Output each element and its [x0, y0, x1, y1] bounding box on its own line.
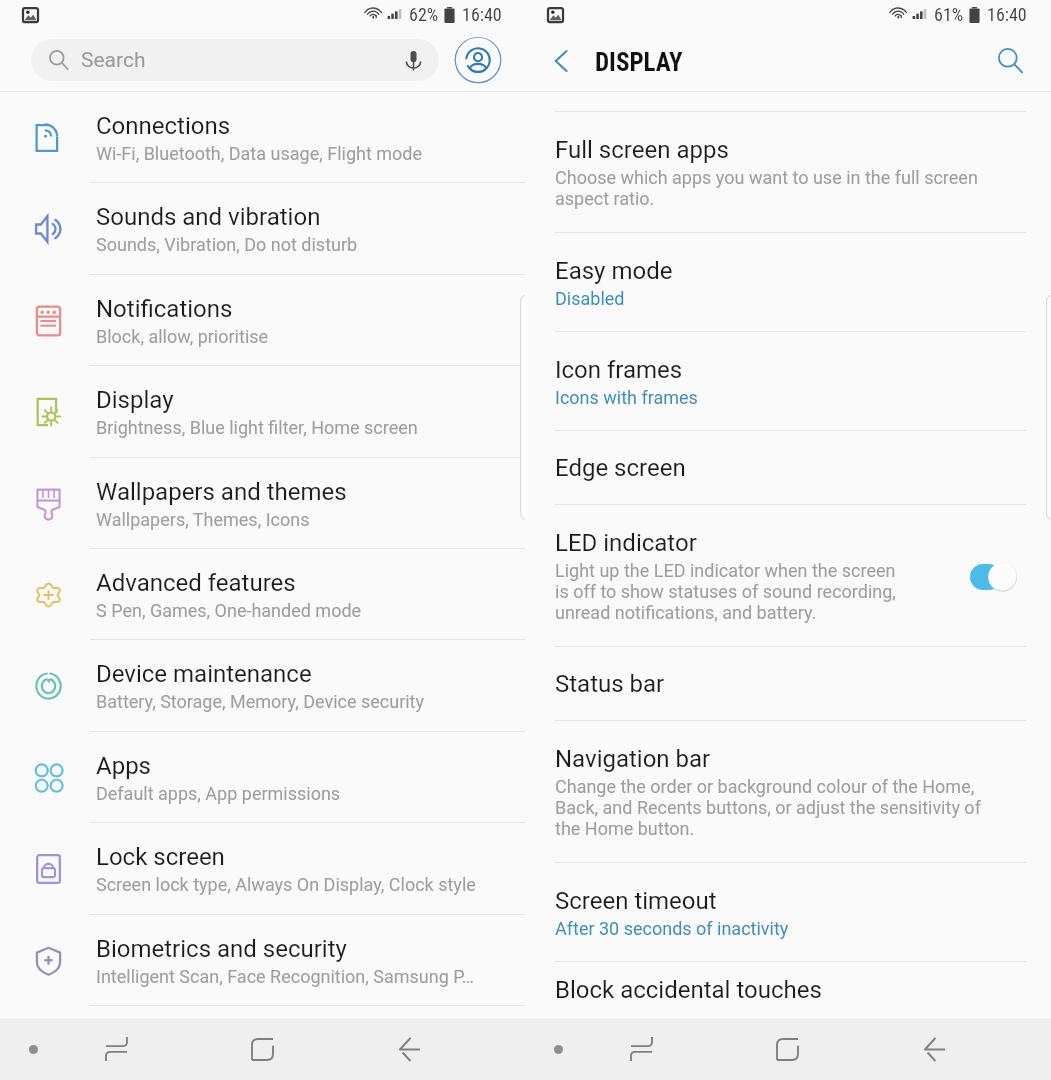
staticText: Biometrics and security [96, 935, 347, 963]
staticText: S Pen, Games, One-handed mode [96, 600, 362, 621]
button[interactable]: LED indicator toggle [970, 562, 1017, 591]
button[interactable]: Apps [0, 732, 525, 823]
staticText: Battery, Storage, Memory, Device securit… [96, 691, 425, 712]
staticText: Change the order or background colour of… [555, 776, 997, 839]
staticText: Connections [96, 112, 231, 140]
button[interactable]: Easy mode [525, 233, 1051, 332]
staticText: Wallpapers, Themes, Icons [96, 509, 310, 530]
button[interactable]: Edge screen [525, 431, 1051, 505]
button[interactable]: Recents [619, 1027, 663, 1071]
button[interactable]: Connections [0, 92, 525, 183]
staticText: 61% [934, 4, 964, 25]
button[interactable]: Navigation bar [525, 721, 1051, 863]
button[interactable]: Biometrics and security [0, 915, 525, 1006]
staticText: 16:40 [462, 4, 502, 25]
button[interactable]: Search [31, 39, 439, 81]
staticText: Icon frames [555, 356, 683, 384]
button[interactable]: Screen timeout [525, 863, 1051, 962]
staticText: Device maintenance [96, 660, 312, 688]
staticText: 16:40 [987, 4, 1027, 25]
staticText: After 30 seconds of inactivity [555, 918, 789, 939]
staticText: Block accidental touches [555, 976, 822, 1004]
button[interactable]: Wallpapers and themes [0, 458, 525, 549]
staticText: Apps [96, 752, 151, 780]
staticText: Search [81, 48, 146, 73]
button[interactable]: LED indicator [525, 505, 1051, 647]
button[interactable]: Navigate up [537, 37, 585, 85]
staticText: Default apps, App permissions [96, 783, 341, 804]
staticText: Lock screen [96, 843, 225, 871]
button[interactable]: Back [388, 1027, 432, 1071]
staticText: Advanced features [96, 569, 296, 597]
staticText: Full screen apps [555, 136, 729, 164]
staticText: Notifications [96, 295, 233, 323]
button[interactable]: Search [986, 37, 1034, 85]
staticText: Intelligent Scan, Face Recognition, Sams… [96, 966, 474, 987]
button[interactable]: Home [765, 1027, 809, 1071]
staticText: Wi-Fi, Bluetooth, Data usage, Flight mod… [96, 143, 423, 164]
staticText: Wallpapers and themes [96, 478, 347, 506]
button[interactable]: Device maintenance [0, 640, 525, 732]
staticText: Choose which apps you want to use in the… [555, 167, 997, 209]
button[interactable]: Block accidental touches [525, 962, 1051, 1018]
staticText: Display [96, 386, 174, 414]
staticText: Sounds and vibration [96, 203, 321, 231]
staticText: DISPLAY [595, 48, 683, 77]
button[interactable]: Show keyboard [13, 1029, 53, 1069]
staticText: Light up the LED indicator when the scre… [555, 560, 907, 623]
staticText: Icons with frames [555, 387, 698, 408]
button[interactable]: Show keyboard [538, 1029, 578, 1069]
button[interactable]: Account [454, 37, 502, 85]
staticText: 62% [409, 4, 439, 25]
staticText: Navigation bar [555, 745, 711, 773]
staticText: Screen lock type, Always On Display, Clo… [96, 874, 476, 895]
button[interactable]: Icon frames [525, 332, 1051, 431]
staticText: Sounds, Vibration, Do not disturb [96, 234, 358, 255]
button[interactable]: Recents [94, 1027, 138, 1071]
button[interactable]: Notifications [0, 275, 525, 366]
staticText: Edge screen [555, 454, 686, 482]
staticText: Brightness, Blue light filter, Home scre… [96, 417, 418, 438]
button[interactable]: Sounds and vibration [0, 183, 525, 275]
button[interactable]: Full screen apps [525, 112, 1051, 233]
staticText: LED indicator [555, 529, 697, 557]
button[interactable]: Lock screen [0, 823, 525, 915]
button[interactable]: Display [0, 366, 525, 458]
staticText: Status bar [555, 670, 665, 698]
staticText: Block, allow, prioritise [96, 326, 269, 347]
button[interactable]: Status bar [525, 647, 1051, 721]
button[interactable]: Back [913, 1027, 957, 1071]
staticText: Screen timeout [555, 887, 717, 915]
staticText: Easy mode [555, 257, 673, 285]
button[interactable]: Home [240, 1027, 284, 1071]
staticText: Disabled [555, 288, 625, 309]
button[interactable]: Advanced features [0, 549, 525, 640]
